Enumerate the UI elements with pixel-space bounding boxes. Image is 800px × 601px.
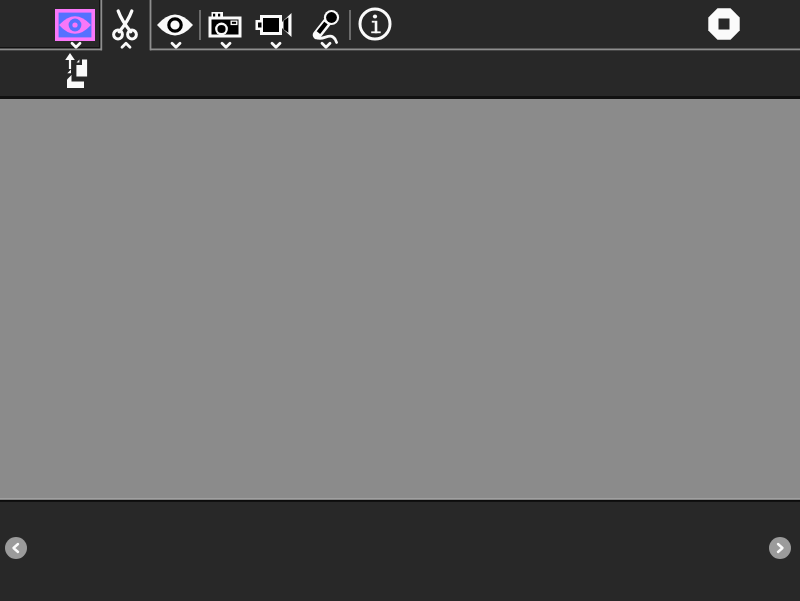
button[interactable]: Previous [5,537,27,559]
button[interactable]: Record video [253,3,297,47]
button[interactable]: Next [769,537,791,559]
button[interactable]: Export files [55,50,99,94]
button[interactable]: Preview [153,3,197,47]
button[interactable]: Crop [103,2,147,46]
button[interactable]: Info [353,2,397,46]
button[interactable]: Display mode [55,9,95,41]
button[interactable]: Microphone [303,3,347,47]
button[interactable]: Screenshot [203,3,247,47]
button[interactable]: Stop [702,2,746,46]
